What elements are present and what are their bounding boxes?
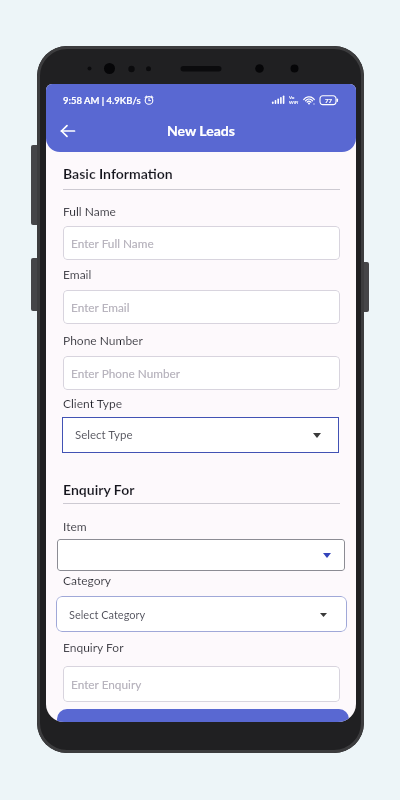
staticText: Category bbox=[63, 573, 112, 587]
staticText: Enter Phone Number bbox=[71, 366, 181, 380]
staticText: Vo bbox=[289, 95, 295, 100]
button[interactable] bbox=[54, 118, 82, 144]
staticText: Basic Information bbox=[63, 165, 173, 182]
button[interactable]: Select Type bbox=[62, 417, 339, 453]
staticText: Select Category bbox=[69, 608, 146, 621]
staticText: Item bbox=[63, 519, 87, 533]
staticText: Enquiry For bbox=[63, 481, 135, 498]
staticText: Client Type bbox=[63, 396, 122, 410]
button[interactable]: Enter Full Name bbox=[63, 226, 340, 260]
staticText: Enter Full Name bbox=[71, 236, 154, 250]
staticText: Full Name bbox=[63, 204, 116, 218]
button[interactable] bbox=[57, 539, 345, 571]
button[interactable]: Enter Enquiry bbox=[63, 666, 340, 702]
staticText: Enquiry For bbox=[63, 640, 124, 654]
button[interactable]: Enter Email bbox=[63, 290, 340, 324]
staticText: 9:58 AM | 4.9KB/s bbox=[63, 95, 141, 106]
staticText: WiFi bbox=[289, 100, 299, 105]
staticText: New Leads bbox=[167, 122, 235, 139]
staticText: Select Type bbox=[75, 428, 133, 442]
staticText: Phone Number bbox=[63, 333, 143, 347]
button[interactable]: Select Category bbox=[56, 596, 347, 632]
staticText: 77 bbox=[325, 97, 332, 104]
staticText: Email bbox=[63, 267, 92, 281]
staticText: Enter Enquiry bbox=[71, 677, 142, 691]
staticText: Enter Email bbox=[71, 300, 130, 314]
button[interactable] bbox=[57, 709, 349, 722]
button[interactable]: Enter Phone Number bbox=[63, 356, 340, 390]
